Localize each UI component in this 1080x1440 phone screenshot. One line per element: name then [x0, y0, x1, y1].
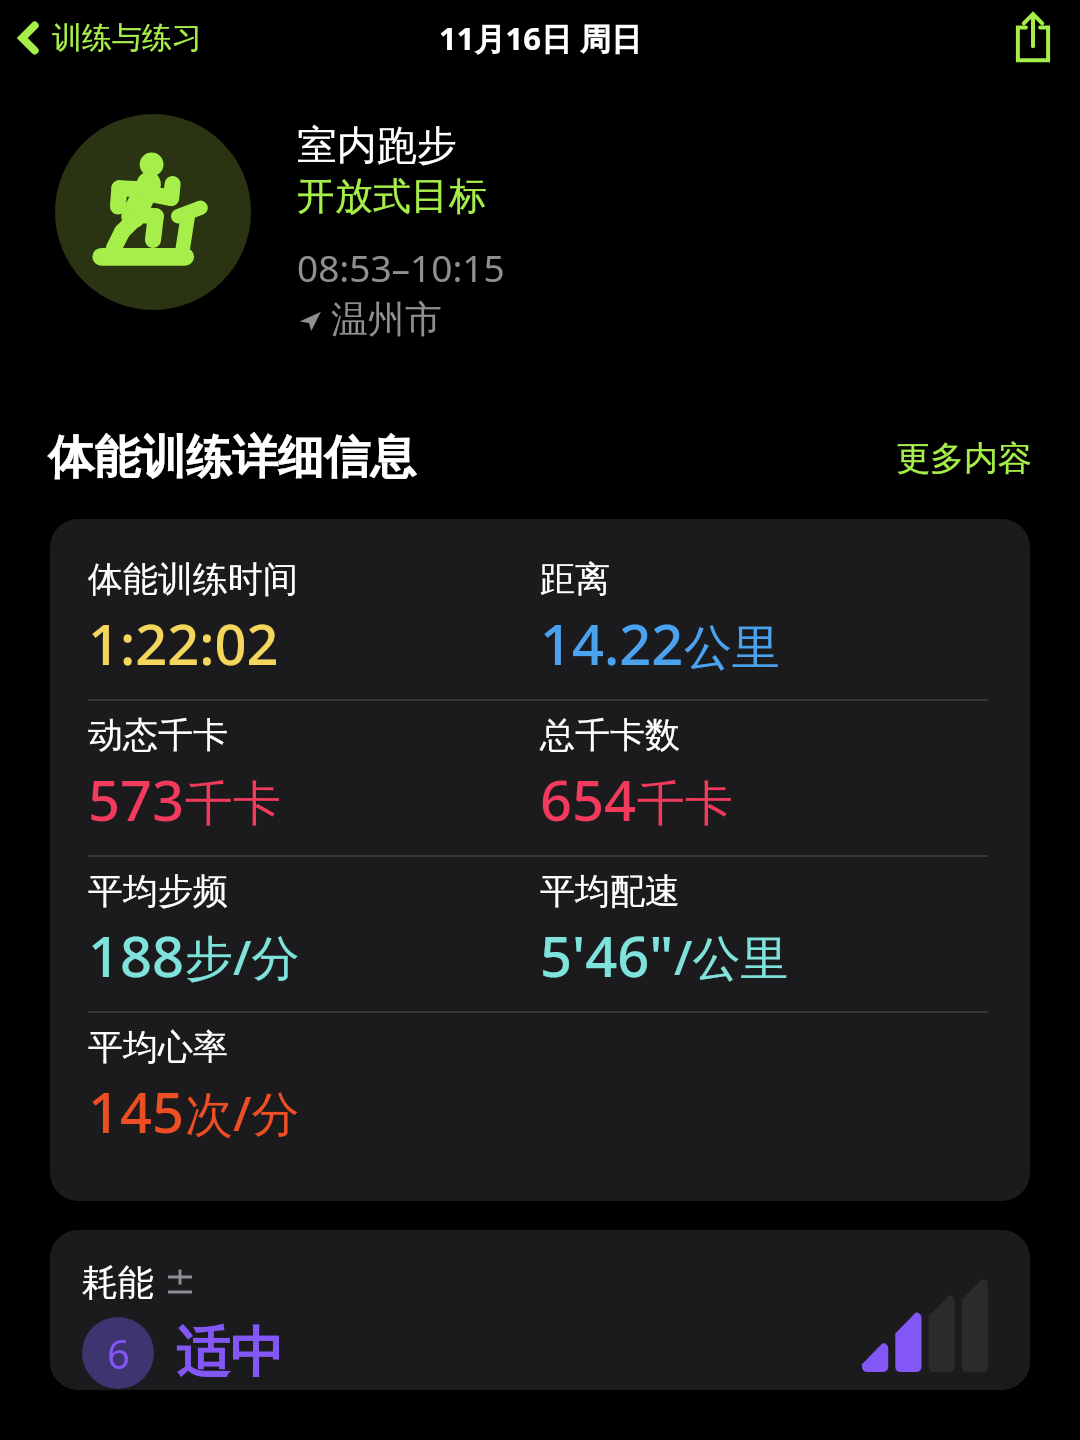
- staticText: 体能训练时间: [88, 557, 298, 601]
- staticText: 573: [88, 761, 185, 837]
- staticText: 千卡: [185, 774, 281, 834]
- staticText: 总千卡数: [540, 713, 680, 757]
- staticText: 188: [88, 917, 185, 993]
- button[interactable]: 分享: [1004, 9, 1062, 67]
- staticText: 平均步频: [88, 869, 228, 913]
- staticText: 室内跑步: [297, 120, 457, 170]
- staticText: 千卡: [637, 774, 733, 834]
- staticText: 公里: [684, 618, 780, 678]
- staticText: 145: [88, 1073, 185, 1149]
- staticText: 08:53–10:15: [297, 242, 505, 292]
- staticText: 1:22:02: [88, 605, 279, 681]
- staticText: 654: [540, 761, 637, 837]
- staticText: 训练与练习: [52, 19, 202, 57]
- staticText: 更多内容: [896, 437, 1032, 480]
- staticText: 体能训练详细信息: [48, 429, 896, 487]
- staticText: 适中: [176, 1319, 284, 1387]
- staticText: 5'46": [540, 917, 674, 993]
- button[interactable]: 体能训练时间: [50, 519, 1030, 1201]
- staticText: 平均心率: [88, 1025, 228, 1069]
- staticText: 开放式目标: [297, 172, 487, 220]
- staticText: 11月16日 周日: [439, 17, 642, 59]
- staticText: 14.22: [540, 605, 684, 681]
- button[interactable]: 更多内容: [896, 437, 1032, 480]
- staticText: 温州市: [331, 296, 442, 343]
- staticText: 距离: [540, 557, 610, 601]
- button[interactable]: 耗能: [50, 1230, 1030, 1390]
- button[interactable]: 训练与练习: [10, 15, 208, 61]
- staticText: /公里: [674, 924, 789, 990]
- staticText: 平均配速: [540, 869, 680, 913]
- staticText: 动态千卡: [88, 713, 228, 757]
- staticText: 耗能: [82, 1260, 154, 1305]
- staticText: 步/分: [185, 924, 300, 990]
- staticText: 次/分: [185, 1080, 300, 1146]
- staticText: 6: [107, 1326, 130, 1380]
